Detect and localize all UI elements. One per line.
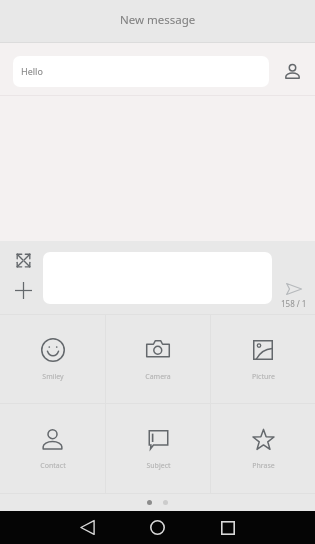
staticText: Camera [145, 372, 171, 382]
button[interactable]: Smiley [0, 315, 105, 403]
staticText: Subject [146, 461, 171, 471]
button[interactable]: Send [277, 281, 311, 309]
button[interactable]: Home [140, 511, 175, 544]
button[interactable]: Camera [106, 315, 210, 403]
button[interactable]: Picture [211, 315, 315, 403]
staticText: New message [120, 12, 196, 28]
button[interactable]: Back [70, 511, 105, 544]
button[interactable]: Hello [13, 56, 269, 87]
staticText: 158 / 1 [281, 298, 307, 309]
staticText: Hello [21, 65, 43, 77]
button[interactable]: Phrase [211, 404, 315, 493]
staticText: Contact [40, 461, 66, 471]
button[interactable]: Add attachment [12, 279, 34, 301]
staticText: Phrase [252, 461, 275, 471]
button[interactable]: Expand [12, 249, 34, 271]
button[interactable]: Select contact [276, 55, 308, 87]
staticText: Smiley [42, 372, 64, 382]
button[interactable]: Recent apps [210, 511, 245, 544]
button[interactable]: Contact [0, 404, 105, 493]
staticText: Picture [252, 372, 275, 382]
button[interactable]: Subject [106, 404, 210, 493]
